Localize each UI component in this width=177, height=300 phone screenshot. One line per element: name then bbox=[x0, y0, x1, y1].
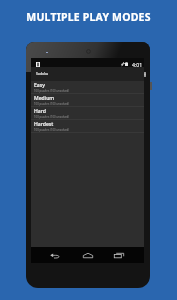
staticText: 100 puzzles (100 unsolved) bbox=[34, 89, 70, 93]
button[interactable]: Hardest bbox=[31, 120, 144, 133]
staticText: Hardest bbox=[34, 121, 54, 128]
button[interactable]: Medium bbox=[31, 94, 144, 107]
staticText: Sudoku bbox=[36, 71, 49, 76]
button[interactable]: Recent apps bbox=[110, 247, 128, 263]
button[interactable]: Back bbox=[46, 247, 64, 263]
button[interactable]: Hard bbox=[31, 107, 144, 120]
staticText: Hard bbox=[34, 108, 46, 115]
button[interactable]: Home bbox=[79, 247, 97, 263]
staticText: 100 puzzles (100 unsolved) bbox=[34, 102, 70, 106]
staticText: Easy bbox=[34, 82, 45, 89]
staticText: Medium bbox=[34, 95, 55, 102]
staticText: 100 puzzles (100 unsolved) bbox=[34, 128, 70, 132]
staticText: 100 puzzles (100 unsolved) bbox=[34, 115, 70, 119]
staticText: MULTIPLE PLAY MODES bbox=[26, 10, 151, 24]
staticText: 4:01 bbox=[132, 61, 143, 68]
button[interactable]: Easy bbox=[31, 81, 144, 94]
